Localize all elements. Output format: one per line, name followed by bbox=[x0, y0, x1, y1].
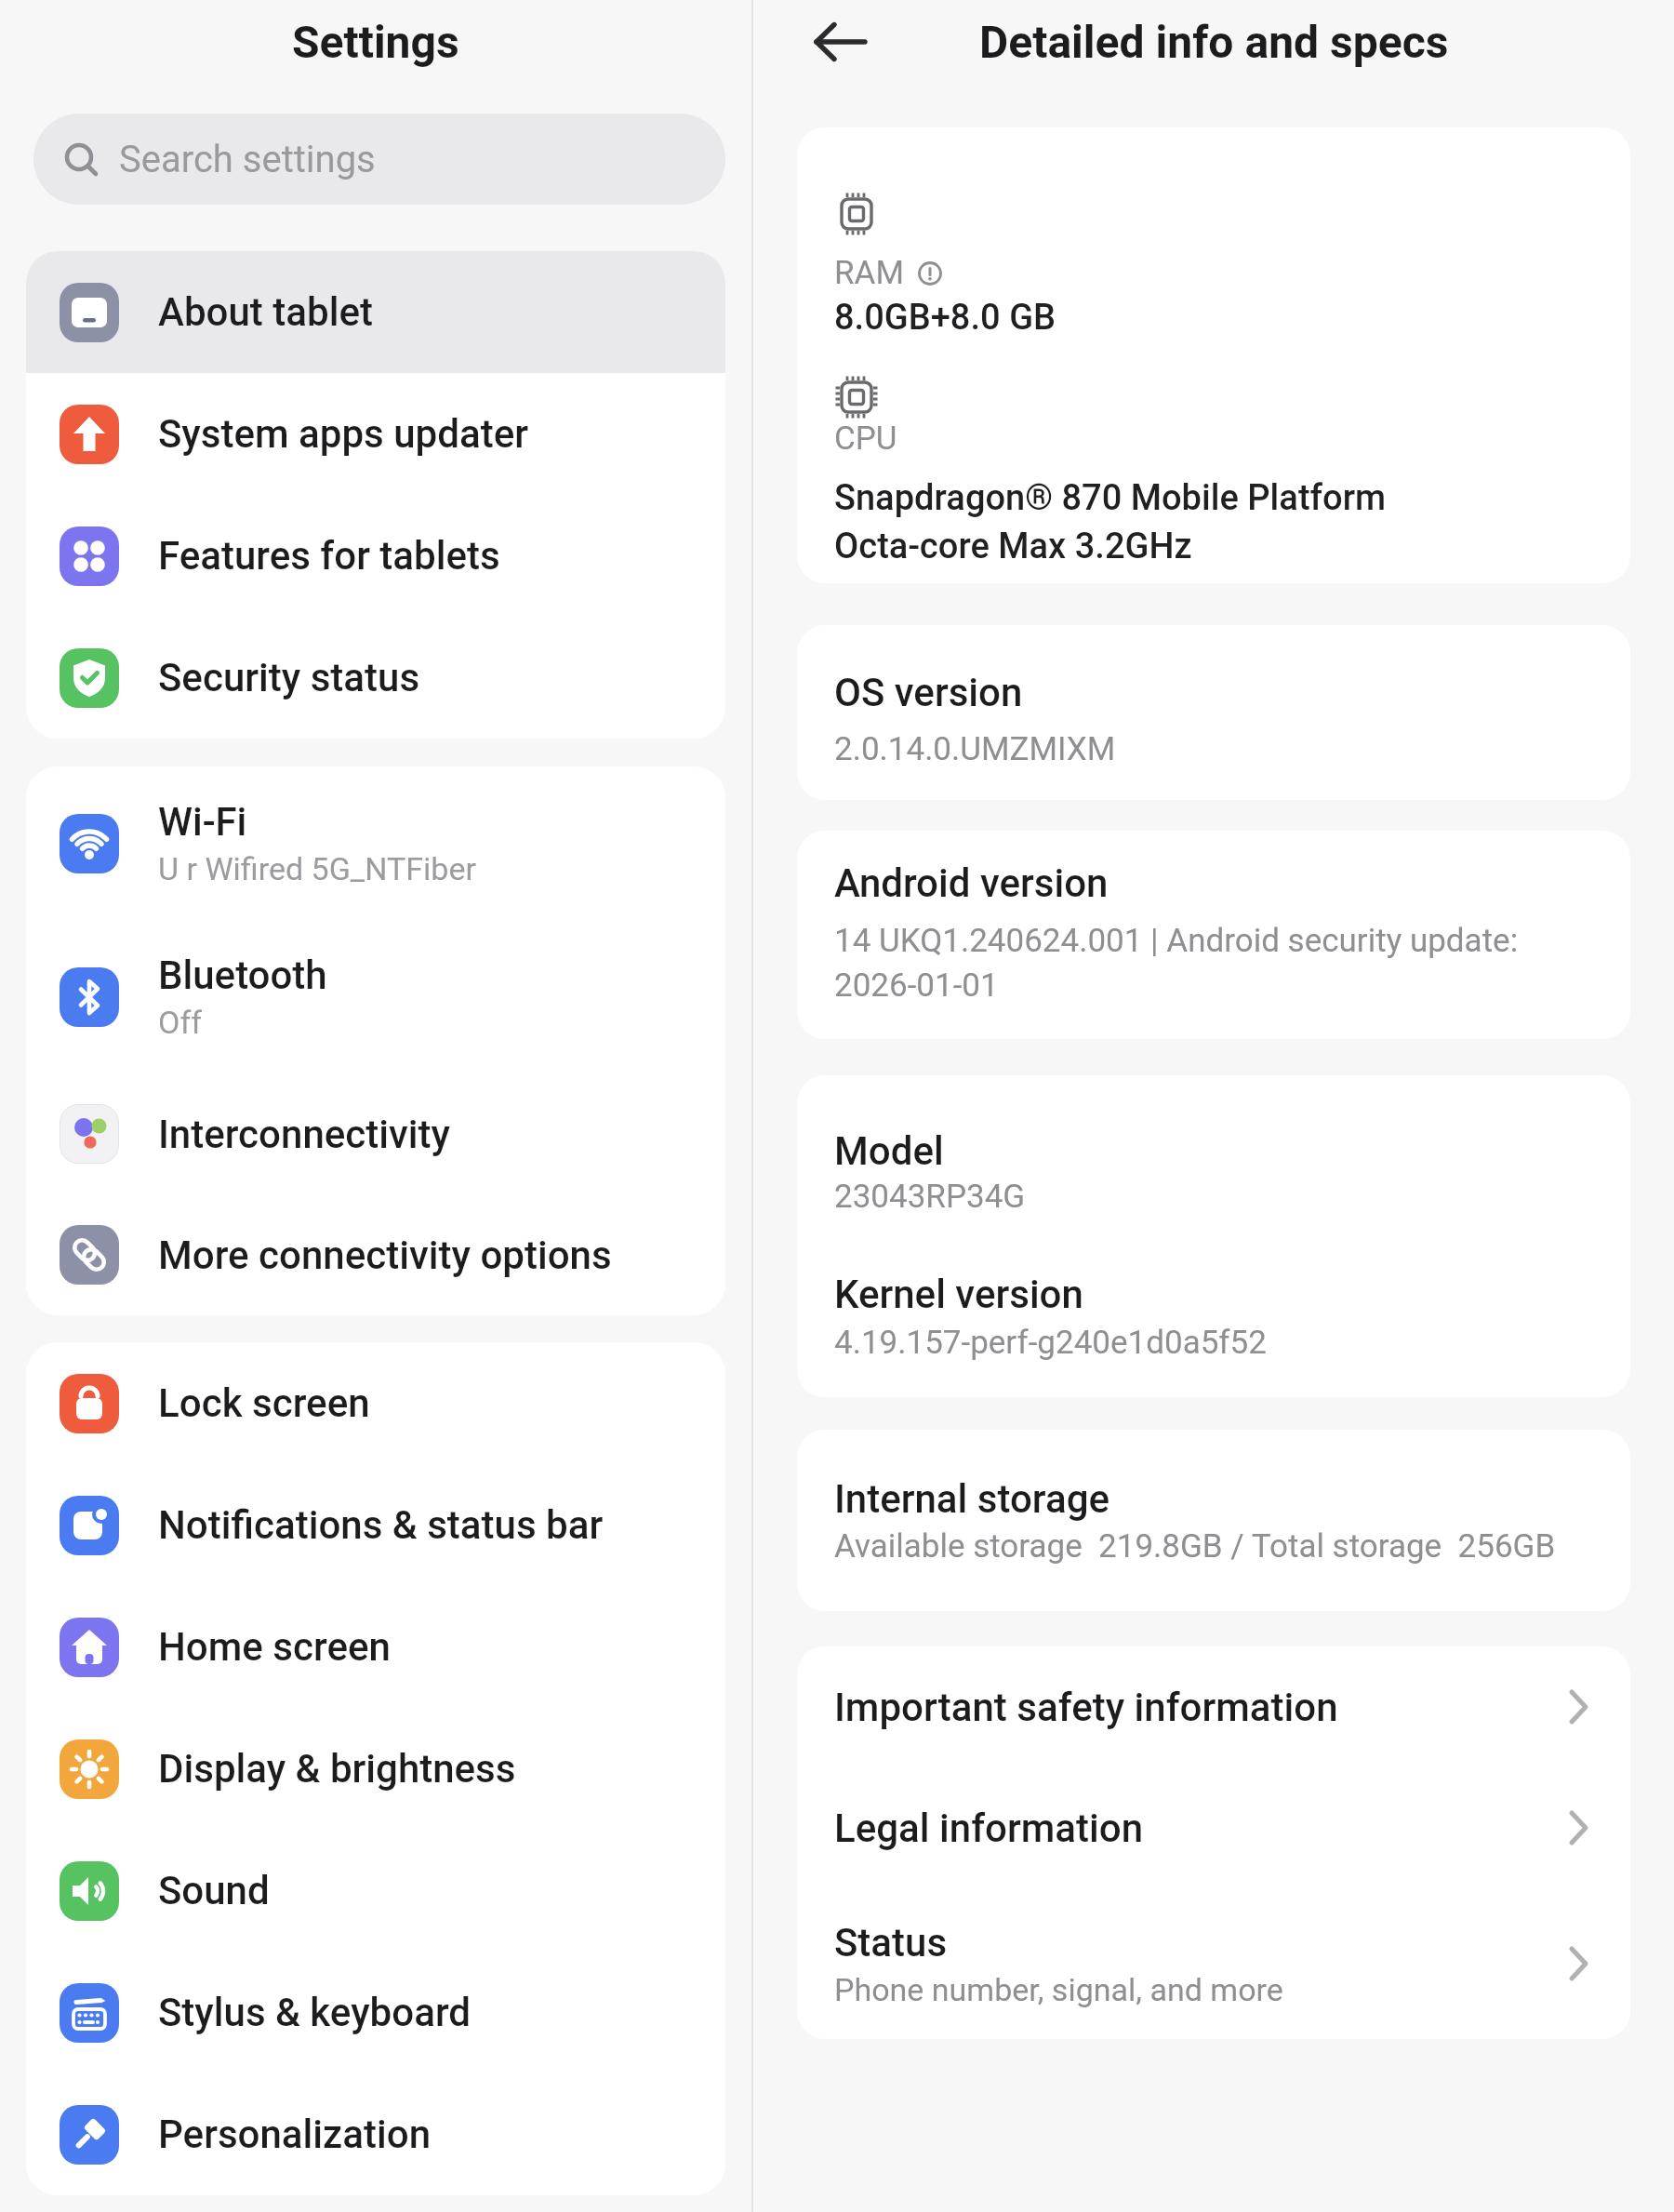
staticText: Model bbox=[834, 1128, 944, 1174]
staticText: Personalization bbox=[158, 2112, 431, 2157]
staticText: Snapdragon® 870 Mobile Platform bbox=[834, 477, 1387, 519]
staticText: 2.0.14.0.UMZMIXM bbox=[834, 730, 1116, 768]
button[interactable]: Important safety information bbox=[797, 1646, 1630, 1767]
staticText: Android version bbox=[834, 860, 1109, 906]
staticText: Interconnectivity bbox=[158, 1112, 450, 1157]
staticText: Octa-core Max 3.2GHz bbox=[834, 526, 1192, 567]
staticText: OS version bbox=[834, 670, 1023, 715]
button[interactable]: Personalization bbox=[26, 2073, 725, 2195]
button[interactable] bbox=[807, 8, 874, 75]
staticText: Lock screen bbox=[158, 1380, 370, 1426]
staticText: U r Wifired 5G_NTFiber bbox=[158, 850, 476, 887]
button[interactable]: Features for tablets bbox=[26, 495, 725, 617]
button[interactable]: More connectivity options bbox=[26, 1194, 725, 1315]
button[interactable]: Search settings bbox=[33, 113, 725, 205]
staticText: 14 UKQ1.240624.001 | Android security up… bbox=[834, 922, 1519, 960]
button[interactable]: Notifications & status bar bbox=[26, 1464, 725, 1586]
staticText: Internal storage bbox=[834, 1476, 1110, 1522]
button[interactable]: Bluetooth bbox=[26, 920, 725, 1073]
staticText: Status bbox=[834, 1920, 948, 1965]
staticText: Wi-Fi bbox=[158, 799, 247, 845]
button[interactable]: Legal information bbox=[797, 1767, 1630, 1888]
button[interactable]: Wi-Fi bbox=[26, 766, 725, 920]
button[interactable]: Security status bbox=[26, 617, 725, 739]
staticText: Features for tablets bbox=[158, 533, 500, 579]
staticText: Phone number, signal, and more bbox=[834, 1971, 1283, 2008]
staticText: Off bbox=[158, 1004, 203, 1041]
button[interactable]: Stylus & keyboard bbox=[26, 1952, 725, 2073]
staticText: System apps updater bbox=[158, 411, 528, 457]
staticText: RAM bbox=[834, 254, 904, 292]
staticText: Legal information bbox=[834, 1806, 1144, 1851]
staticText: Bluetooth bbox=[158, 953, 327, 998]
staticText: Settings bbox=[292, 16, 459, 68]
staticText: Home screen bbox=[158, 1624, 391, 1670]
staticText: Detailed info and specs bbox=[979, 16, 1449, 68]
staticText: Stylus & keyboard bbox=[158, 1990, 471, 2035]
button[interactable]: About tablet bbox=[26, 251, 725, 373]
button[interactable]: Lock screen bbox=[26, 1342, 725, 1464]
staticText: 2026-01-01 bbox=[834, 966, 999, 1005]
staticText: 4.19.157-perf-g240e1d0a5f52 bbox=[834, 1324, 1267, 1362]
staticText: 23043RP34G bbox=[834, 1178, 1026, 1216]
button[interactable]: Sound bbox=[26, 1830, 725, 1952]
staticText: CPU bbox=[834, 420, 897, 458]
button[interactable]: Display & brightness bbox=[26, 1708, 725, 1830]
staticText: Important safety information bbox=[834, 1685, 1338, 1730]
staticText: Display & brightness bbox=[158, 1746, 516, 1792]
staticText: 8.0GB+8.0 GB bbox=[834, 297, 1056, 339]
staticText: Search settings bbox=[119, 138, 376, 181]
button[interactable]: Interconnectivity bbox=[26, 1073, 725, 1194]
staticText: Security status bbox=[158, 655, 420, 700]
staticText: Kernel version bbox=[834, 1272, 1083, 1317]
staticText: Available storage 219.8GB / Total storag… bbox=[834, 1527, 1556, 1566]
button[interactable]: Home screen bbox=[26, 1586, 725, 1708]
staticText: Notifications & status bar bbox=[158, 1502, 604, 1548]
button[interactable]: Status bbox=[797, 1888, 1630, 2039]
staticText: More connectivity options bbox=[158, 1233, 612, 1278]
staticText: Sound bbox=[158, 1868, 270, 1913]
button[interactable]: System apps updater bbox=[26, 373, 725, 495]
staticText: About tablet bbox=[158, 289, 373, 335]
